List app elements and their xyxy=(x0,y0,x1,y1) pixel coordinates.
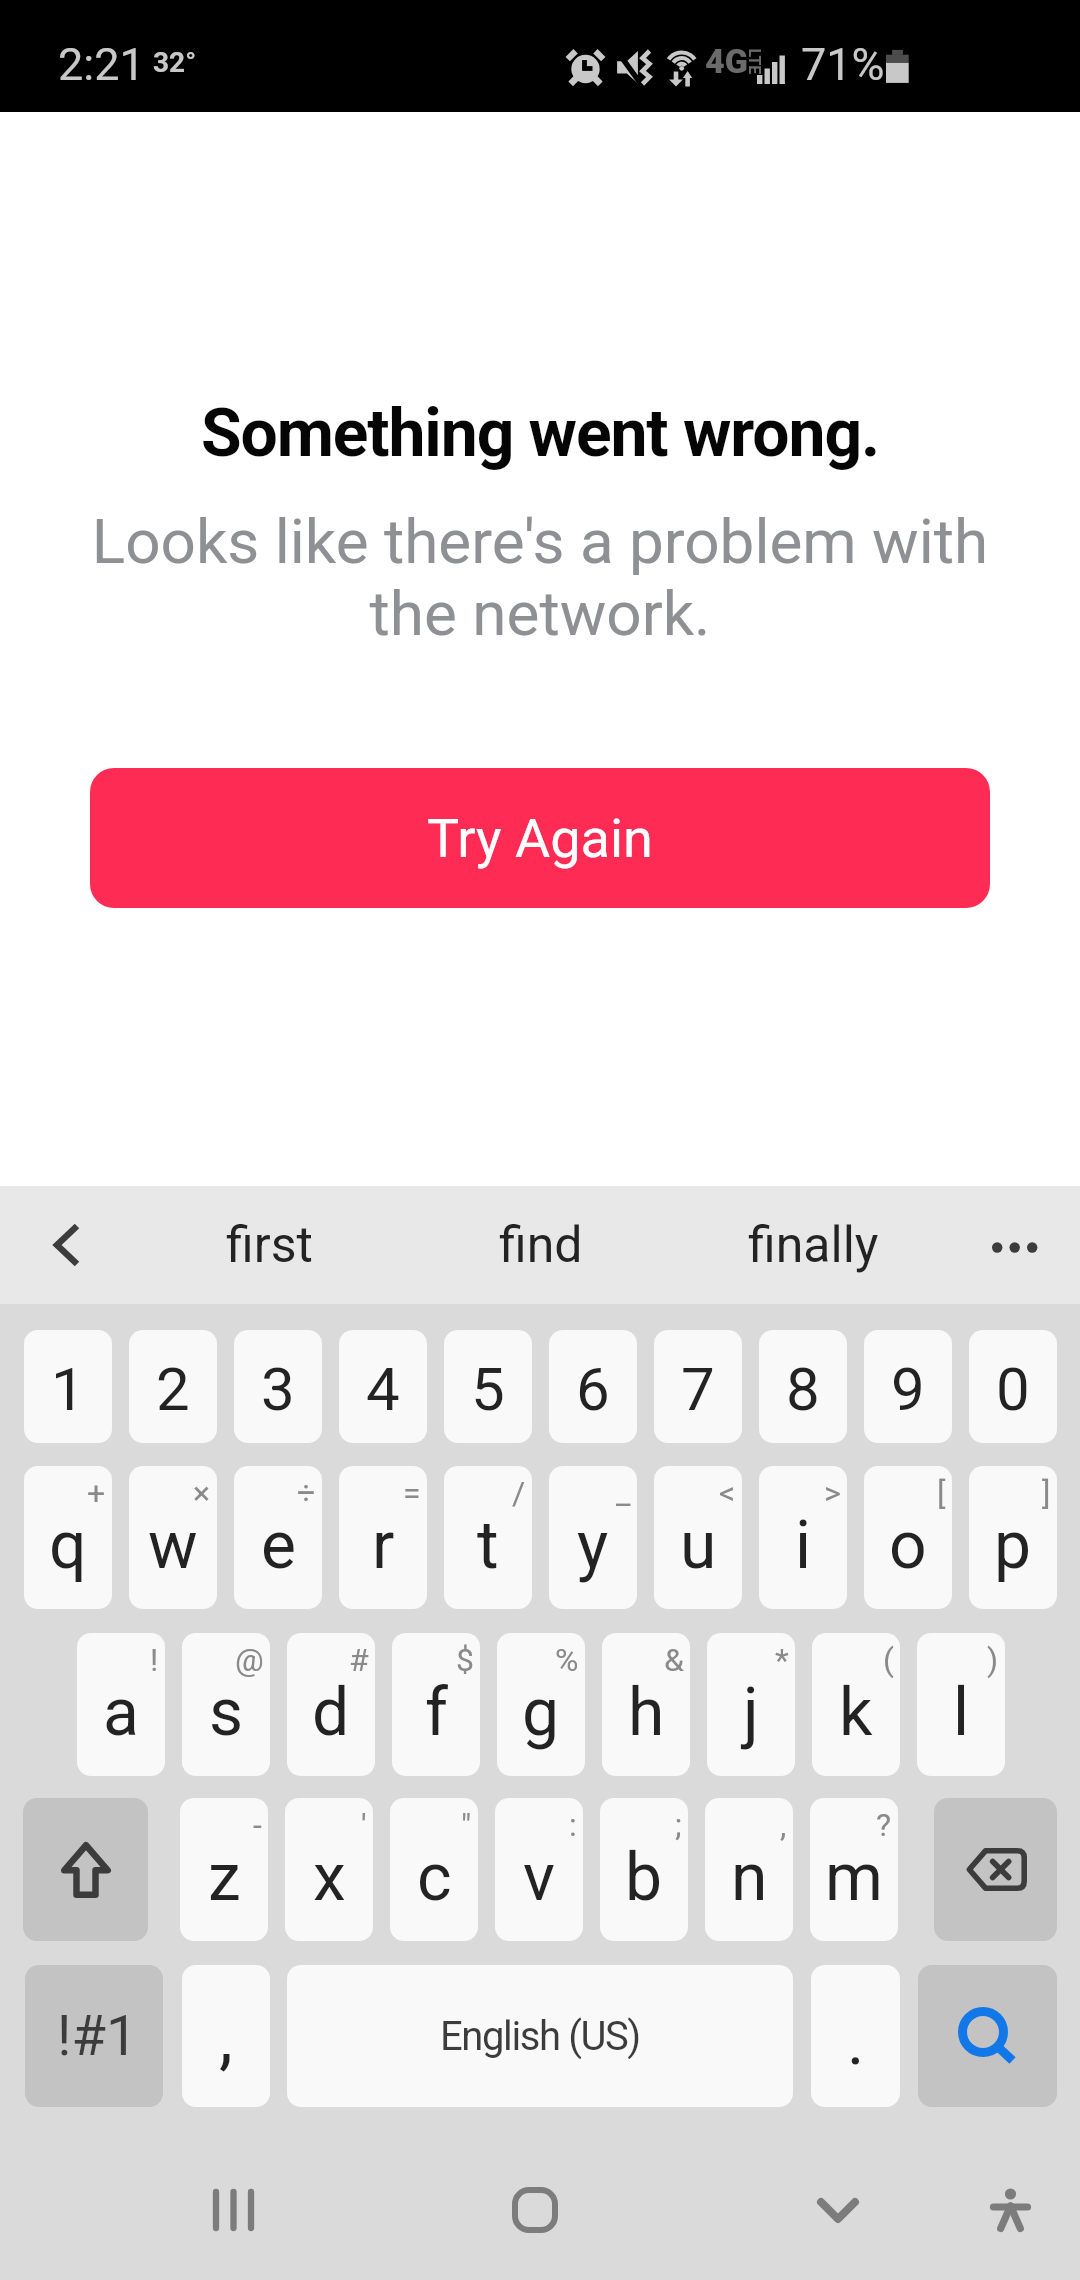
button[interactable]: × xyxy=(129,1466,217,1609)
staticText: 4G xyxy=(705,41,748,81)
button[interactable]: " xyxy=(390,1798,478,1941)
staticText: / xyxy=(512,1474,526,1512)
staticText: l xyxy=(953,1674,970,1751)
staticText: 1 xyxy=(51,1354,85,1424)
button[interactable]: # xyxy=(287,1633,375,1776)
staticText: _ xyxy=(616,1474,631,1512)
staticText: - xyxy=(253,1806,262,1844)
button[interactable]: 0 xyxy=(969,1330,1057,1443)
button[interactable]: . xyxy=(811,1965,900,2107)
button[interactable]: _ xyxy=(549,1466,637,1609)
staticText: : xyxy=(569,1806,577,1844)
staticText: ? xyxy=(876,1806,892,1844)
button[interactable]: , xyxy=(182,1965,270,2107)
staticText: . xyxy=(847,2003,865,2080)
button[interactable]: Try Again xyxy=(90,768,990,908)
staticText: " xyxy=(461,1806,472,1844)
staticText: u xyxy=(680,1507,717,1584)
button[interactable]: English (US) xyxy=(287,1965,793,2107)
staticText: o xyxy=(889,1507,927,1584)
staticText: ÷ xyxy=(297,1474,316,1512)
button[interactable]: ; xyxy=(600,1798,688,1941)
staticText: # xyxy=(349,1641,369,1679)
staticText: i xyxy=(795,1507,812,1584)
button[interactable]: 5 xyxy=(444,1330,532,1443)
button[interactable]: Accessibility xyxy=(940,2140,1080,2280)
button[interactable]: 7 xyxy=(654,1330,742,1443)
button[interactable]: ' xyxy=(285,1798,373,1941)
staticText: 6 xyxy=(576,1354,610,1424)
button[interactable]: [ xyxy=(864,1466,952,1609)
button[interactable]: Previous suggestions xyxy=(22,1200,112,1290)
staticText: < xyxy=(719,1474,736,1512)
staticText: first xyxy=(226,1216,313,1275)
staticText: j xyxy=(743,1674,759,1751)
button[interactable]: Hide keyboard xyxy=(768,2140,908,2280)
staticText: 5 xyxy=(471,1354,505,1424)
button[interactable]: Search xyxy=(918,1965,1057,2107)
button[interactable]: More options xyxy=(970,1200,1060,1290)
staticText: f xyxy=(425,1674,448,1751)
button[interactable]: < xyxy=(654,1466,742,1609)
button[interactable]: : xyxy=(495,1798,583,1941)
button[interactable]: Backspace xyxy=(934,1798,1057,1941)
staticText: ] xyxy=(1042,1474,1051,1512)
button[interactable]: * xyxy=(707,1633,795,1776)
button[interactable]: + xyxy=(24,1466,112,1609)
button[interactable]: > xyxy=(759,1466,847,1609)
button[interactable]: Home xyxy=(465,2140,605,2280)
staticText: 4 xyxy=(366,1354,400,1424)
button[interactable]: $ xyxy=(392,1633,480,1776)
staticText: r xyxy=(372,1507,395,1584)
staticText: > xyxy=(824,1474,841,1512)
staticText: 2:21 xyxy=(58,38,145,91)
staticText: 2 xyxy=(156,1354,190,1424)
button[interactable]: / xyxy=(444,1466,532,1609)
staticText: $ xyxy=(456,1641,474,1679)
button[interactable]: Symbols xyxy=(25,1965,163,2107)
button[interactable]: ] xyxy=(969,1466,1057,1609)
button[interactable]: 4 xyxy=(339,1330,427,1443)
staticText: k xyxy=(839,1674,873,1751)
staticText: & xyxy=(664,1641,684,1679)
button[interactable]: , xyxy=(705,1798,793,1941)
button[interactable]: - xyxy=(180,1798,268,1941)
staticText: 71% xyxy=(801,38,885,91)
staticText: e xyxy=(261,1507,296,1584)
staticText: finally xyxy=(748,1216,879,1275)
button[interactable]: ÷ xyxy=(234,1466,322,1609)
button[interactable]: & xyxy=(602,1633,690,1776)
button[interactable]: 8 xyxy=(759,1330,847,1443)
staticText: , xyxy=(219,1997,233,2079)
staticText: + xyxy=(87,1474,106,1512)
button[interactable]: Shift xyxy=(23,1798,148,1941)
staticText: ; xyxy=(675,1806,682,1844)
staticText: v xyxy=(523,1839,555,1916)
button[interactable]: ? xyxy=(810,1798,898,1941)
button[interactable]: find xyxy=(421,1186,661,1304)
button[interactable]: first xyxy=(149,1186,389,1304)
button[interactable]: ! xyxy=(77,1633,165,1776)
button[interactable]: 9 xyxy=(864,1330,952,1443)
staticText: n xyxy=(731,1839,768,1916)
staticText: !#1 xyxy=(57,2003,138,2069)
staticText: = xyxy=(403,1474,421,1512)
button[interactable]: @ xyxy=(182,1633,270,1776)
staticText: b xyxy=(625,1839,663,1916)
button[interactable]: ( xyxy=(812,1633,900,1776)
staticText: 8 xyxy=(786,1354,820,1424)
staticText: * xyxy=(775,1641,789,1679)
button[interactable]: 6 xyxy=(549,1330,637,1443)
button[interactable]: ) xyxy=(917,1633,1005,1776)
button[interactable]: Recents xyxy=(163,2140,303,2280)
button[interactable]: 1 xyxy=(24,1330,112,1443)
button[interactable]: 3 xyxy=(234,1330,322,1443)
staticText: × xyxy=(193,1474,211,1512)
staticText: 7 xyxy=(681,1354,715,1424)
staticText: , xyxy=(780,1806,787,1844)
button[interactable]: 2 xyxy=(129,1330,217,1443)
staticText: p xyxy=(994,1507,1032,1584)
button[interactable]: = xyxy=(339,1466,427,1609)
button[interactable]: finally xyxy=(693,1186,933,1304)
button[interactable]: % xyxy=(497,1633,585,1776)
